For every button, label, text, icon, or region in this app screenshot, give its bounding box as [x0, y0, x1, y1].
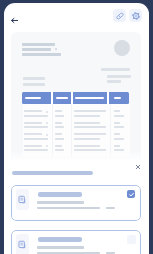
button[interactable]: Selected — [11, 185, 141, 221]
button[interactable]: Select — [11, 230, 141, 254]
button[interactable]: Attach — [113, 9, 126, 22]
button[interactable]: Selected — [127, 190, 135, 198]
button[interactable]: Close — [133, 162, 143, 172]
button[interactable]: Back — [4, 9, 25, 31]
button[interactable]: Settings — [129, 9, 142, 22]
